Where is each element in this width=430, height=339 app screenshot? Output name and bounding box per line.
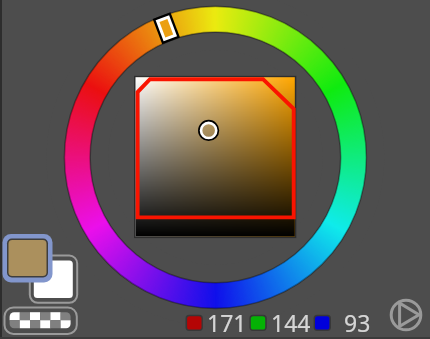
button[interactable]: Opacity slider	[4, 306, 79, 334]
staticText: 144	[271, 307, 311, 338]
staticText: 93	[344, 307, 371, 338]
staticText: 171	[207, 307, 247, 338]
button[interactable]: New colour swatch	[2, 234, 52, 283]
button[interactable]: Hue ring	[64, 6, 366, 308]
button[interactable]: Apply colour	[388, 297, 424, 333]
button[interactable]: Saturation and value field	[134, 76, 296, 238]
button[interactable]: Previous colour swatch	[29, 255, 78, 304]
